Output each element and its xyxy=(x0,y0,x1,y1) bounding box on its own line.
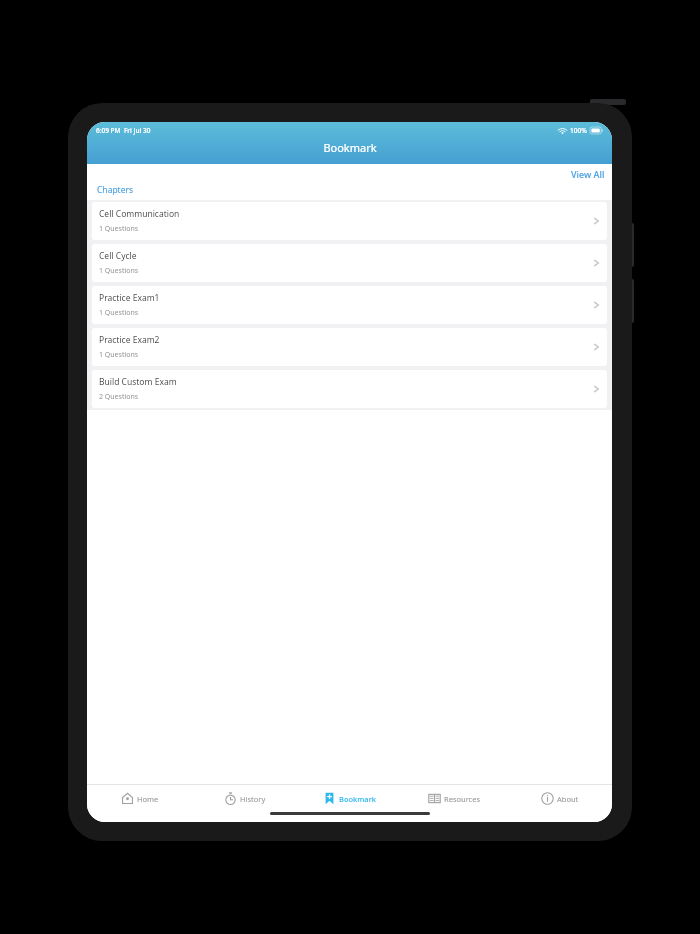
button[interactable]: View All xyxy=(564,165,612,183)
staticText: View All xyxy=(571,168,605,180)
staticText: 6:09 PM Fri Jul 30 xyxy=(96,126,151,135)
staticText: 1 Questions xyxy=(99,308,139,318)
staticText: Chapters xyxy=(97,184,134,196)
staticText: 1 Questions xyxy=(99,224,139,234)
button[interactable]: Practice Exam1 xyxy=(92,286,607,324)
staticText: Cell Cycle xyxy=(99,250,137,262)
staticText: Home xyxy=(137,794,159,804)
staticText: Practice Exam1 xyxy=(99,292,160,304)
staticText: Bookmark xyxy=(339,794,377,804)
button[interactable]: Home xyxy=(87,785,192,812)
button[interactable]: Build Custom Exam xyxy=(92,370,607,408)
button[interactable]: Cell Cycle xyxy=(92,244,607,282)
staticText: Resources xyxy=(444,794,481,804)
staticText: 1 Questions xyxy=(99,266,139,276)
staticText: 100% xyxy=(570,126,587,135)
staticText: 2 Questions xyxy=(99,392,139,402)
staticText: 1 Questions xyxy=(99,350,139,360)
button[interactable]: Cell Communication xyxy=(92,202,607,240)
button[interactable]: Practice Exam2 xyxy=(92,328,607,366)
staticText: Build Custom Exam xyxy=(99,376,177,388)
staticText: History xyxy=(240,794,266,804)
staticText: About xyxy=(557,794,579,804)
staticText: Bookmark xyxy=(323,140,377,155)
staticText: Cell Communication xyxy=(99,208,180,220)
button[interactable]: About xyxy=(507,785,612,812)
staticText: Practice Exam2 xyxy=(99,334,160,346)
button[interactable]: History xyxy=(192,785,297,812)
button[interactable]: Bookmark xyxy=(297,785,402,812)
button[interactable]: Resources xyxy=(402,785,507,812)
